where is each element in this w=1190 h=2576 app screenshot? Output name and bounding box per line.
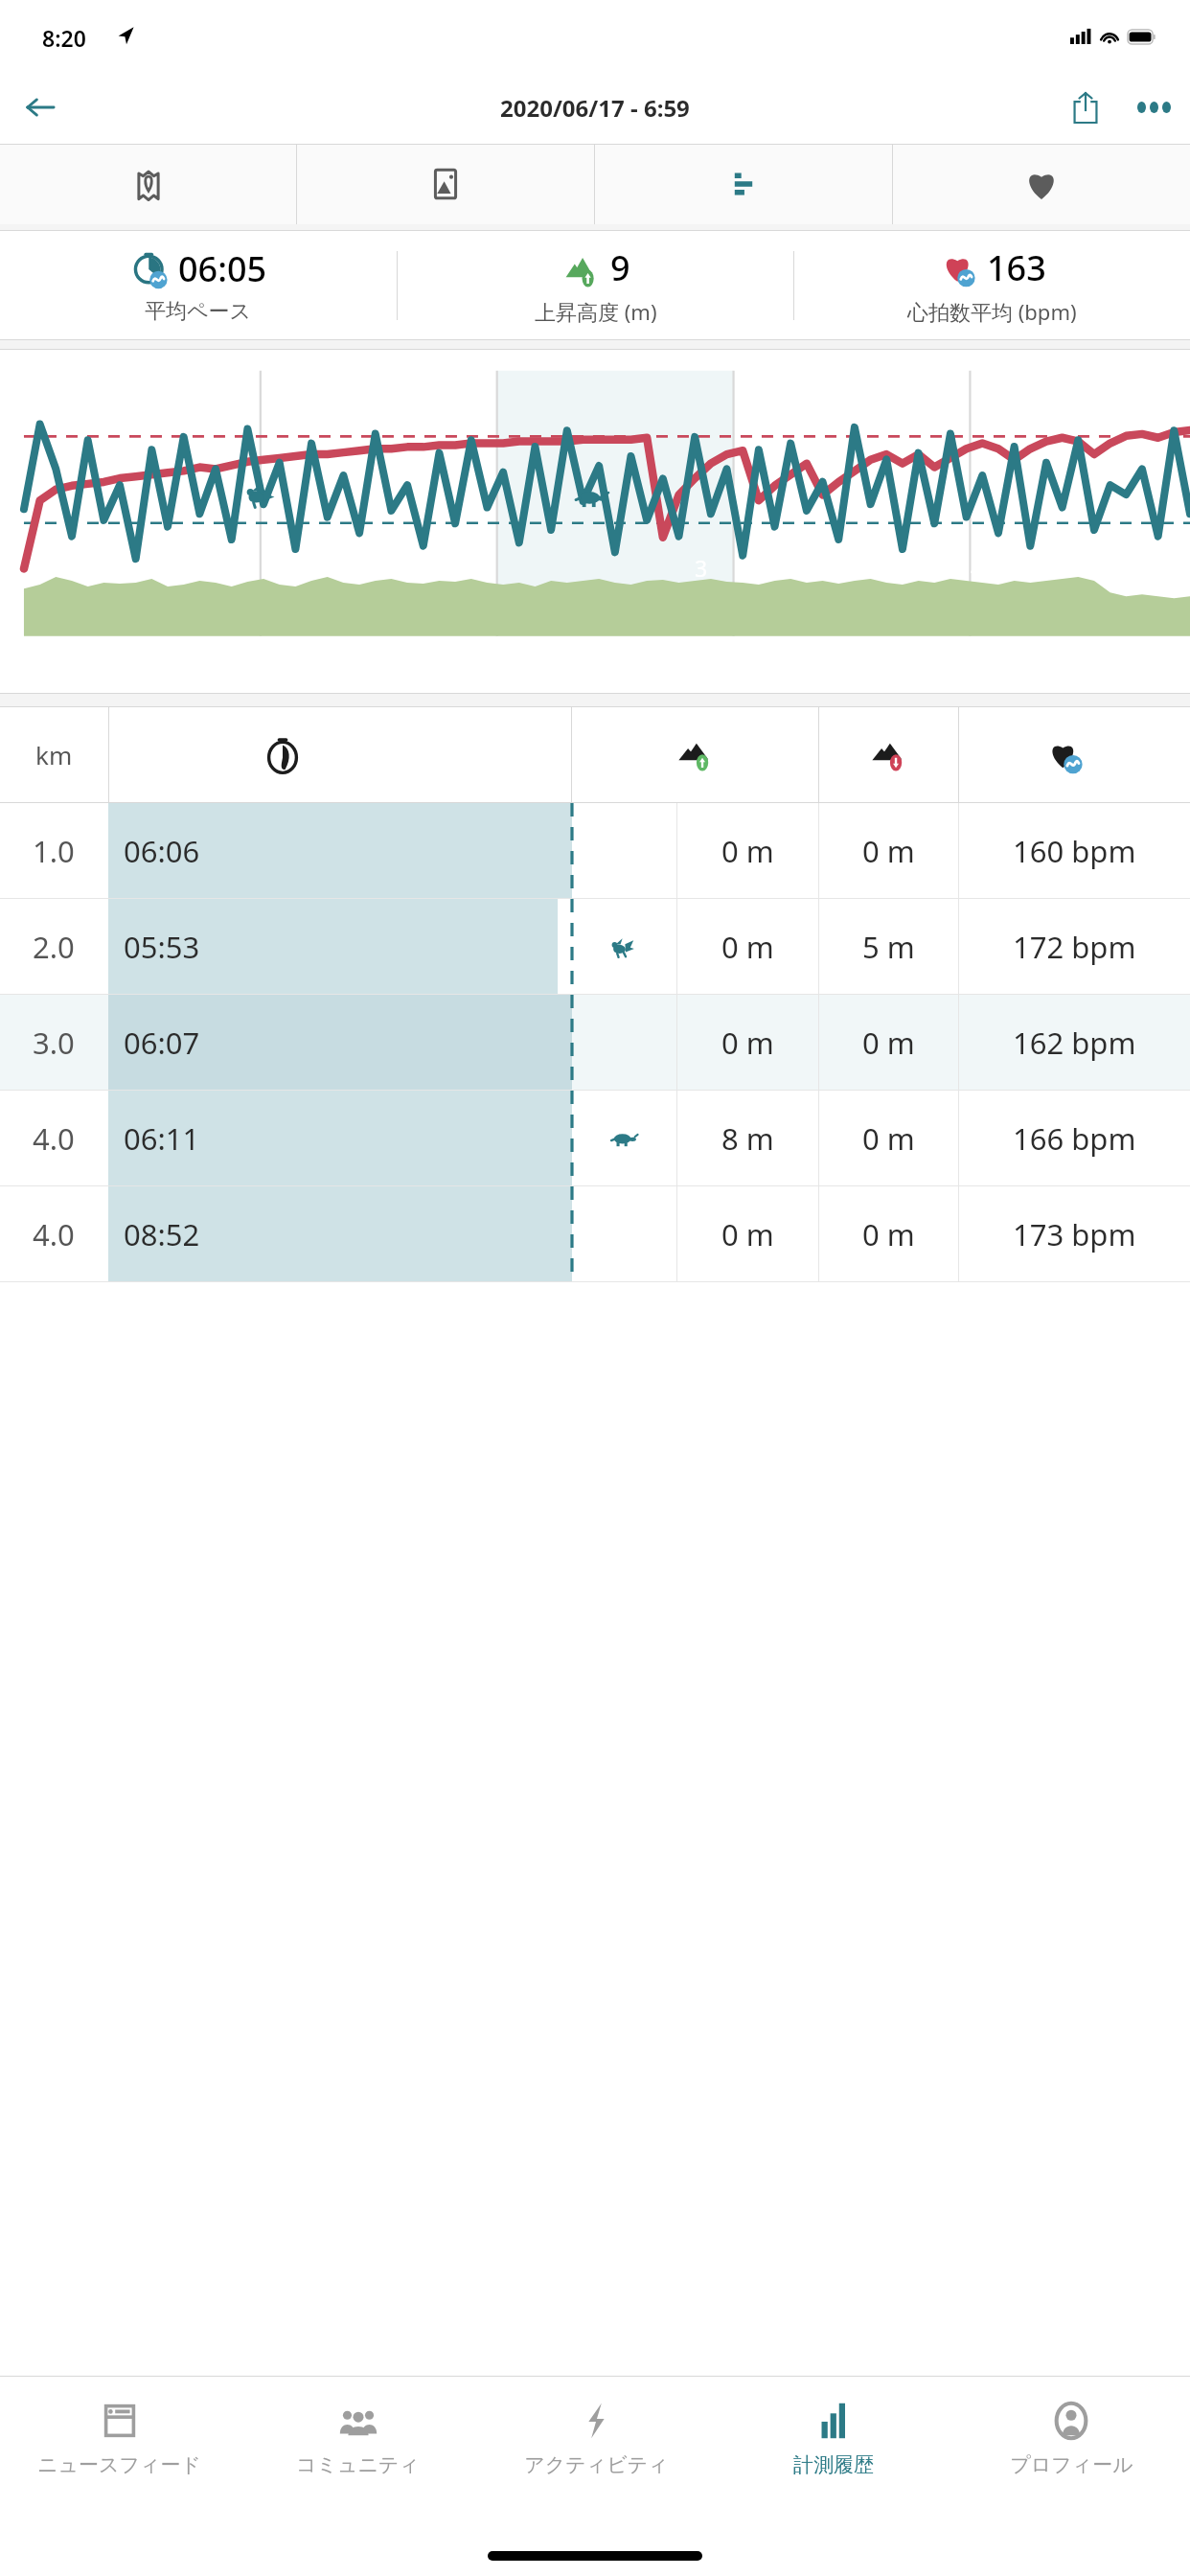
staticText: 平均ペース [145, 298, 252, 325]
button[interactable]: 4.0 [0, 1186, 1190, 1281]
button[interactable]: 4.0 [0, 1091, 1190, 1185]
staticText: 163 [987, 244, 1046, 291]
staticText: 0 m [721, 1023, 774, 1063]
button[interactable]: 06:05 [0, 245, 397, 325]
staticText: 8 m [721, 1118, 774, 1159]
staticText: 2.0 [33, 927, 75, 967]
staticText: 8:20 [42, 23, 86, 53]
button[interactable]: Heart rate [893, 144, 1190, 224]
staticText: 05:53 [124, 927, 200, 967]
staticText: 9 [610, 244, 630, 291]
button[interactable]: Stats [595, 144, 892, 224]
staticText: 3 [695, 553, 708, 583]
staticText: 162 bpm [1013, 1023, 1136, 1063]
staticText: 172 bpm [1013, 927, 1136, 967]
staticText: 上昇高度 (m) [535, 297, 657, 326]
staticText: 166 bpm [1013, 1118, 1136, 1159]
staticText: 06:06 [124, 831, 200, 871]
staticText: 4.0 [33, 1118, 75, 1159]
button[interactable]: ニュースフィード [0, 2377, 239, 2520]
staticText: 08:52 [124, 1214, 200, 1254]
button[interactable]: プロフィール [952, 2377, 1190, 2520]
staticText: 0 m [721, 927, 774, 967]
staticText: 0 m [862, 1214, 915, 1254]
staticText: 06:05 [178, 245, 267, 292]
staticText: km [35, 738, 73, 771]
button[interactable]: 2.0 [0, 899, 1190, 994]
staticText: 0 m [862, 1023, 915, 1063]
staticText: 06:11 [124, 1118, 200, 1159]
staticText: 1 [144, 553, 157, 583]
button[interactable]: More options [1117, 71, 1190, 144]
staticText: 3.0 [33, 1023, 75, 1063]
staticText: プロフィール [1010, 2452, 1133, 2477]
button[interactable]: 9 [398, 244, 793, 326]
button[interactable]: Map [0, 144, 296, 224]
staticText: 160 bpm [1013, 831, 1136, 871]
button[interactable]: 計測履歴 [715, 2377, 952, 2520]
staticText: 2020/06/17 - 6:59 [500, 92, 690, 124]
staticText: コミュニティ [296, 2452, 420, 2477]
button[interactable]: Back [11, 79, 69, 136]
button[interactable]: 1.0 [0, 803, 1190, 898]
staticText: 1.0 [33, 831, 75, 871]
staticText: ニュースフィード [37, 2452, 201, 2477]
button[interactable]: 163 [794, 244, 1190, 326]
button[interactable]: Photos [297, 144, 594, 224]
staticText: 計測履歴 [793, 2452, 874, 2477]
staticText: 06:07 [124, 1023, 200, 1063]
button[interactable]: 1 [0, 350, 1190, 680]
button[interactable]: Share [1054, 76, 1117, 139]
staticText: 0 m [721, 1214, 774, 1254]
staticText: アクティビティ [524, 2452, 669, 2477]
staticText: 4 [971, 553, 984, 583]
button[interactable]: アクティビティ [477, 2377, 715, 2520]
button[interactable]: コミュニティ [239, 2377, 477, 2520]
staticText: 心拍数平均 (bpm) [907, 297, 1077, 326]
staticText: 5 m [862, 927, 915, 967]
staticText: 173 bpm [1013, 1214, 1136, 1254]
staticText: 4.0 [33, 1214, 75, 1254]
staticText: 0 m [862, 831, 915, 871]
button[interactable]: 3.0 [0, 995, 1190, 1090]
staticText: 0 m [721, 831, 774, 871]
staticText: 0 m [862, 1118, 915, 1159]
